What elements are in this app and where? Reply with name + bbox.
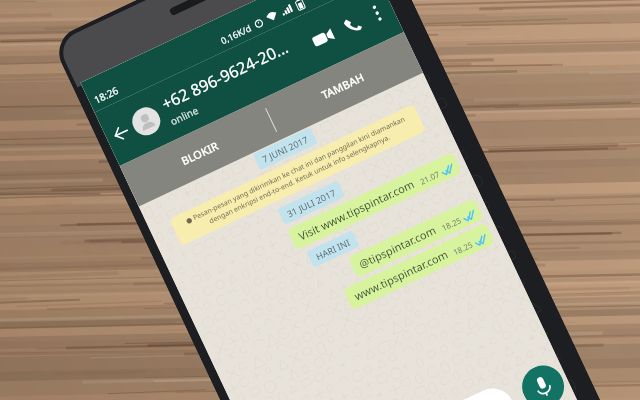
staticText: BLOKIR — [179, 138, 221, 168]
staticText: 18.25 — [451, 238, 475, 257]
button[interactable]: Type a message — [279, 381, 522, 400]
staticText: 21.07 — [418, 168, 441, 187]
staticText: 18:26 — [91, 83, 121, 107]
button[interactable]: More options — [362, 0, 392, 27]
staticText: ● Pesan-pesan yang dikirimkan ke chat in… — [179, 112, 416, 238]
staticText: www.tipspintar.com — [352, 246, 450, 303]
button[interactable]: @tipspintar.com — [347, 198, 484, 278]
staticText: 31 JULI 2017 — [285, 186, 338, 219]
button[interactable]: TAMBAH — [262, 32, 423, 140]
staticText: online — [168, 103, 201, 128]
button[interactable]: Contact photo — [128, 103, 165, 140]
staticText: @tipspintar.com — [356, 222, 439, 271]
button[interactable]: Call — [334, 7, 369, 42]
button[interactable]: Record voice message — [515, 359, 571, 400]
button[interactable]: Visit www.tipspintar.com — [287, 152, 462, 251]
staticText: 7 JUNI 2017 — [260, 133, 310, 165]
button[interactable]: HARI INI — [306, 230, 360, 268]
button[interactable]: 31 JULI 2017 — [277, 180, 345, 225]
button[interactable]: BLOKIR — [120, 99, 280, 207]
button[interactable]: ● Pesan-pesan yang dikirimkan ke chat in… — [169, 104, 426, 246]
button[interactable]: 7 JUNI 2017 — [252, 127, 318, 171]
staticText: 18.25 — [440, 214, 463, 233]
staticText: TAMBAH — [319, 69, 367, 102]
staticText: +62 896-9624-20... — [158, 36, 292, 115]
button[interactable]: www.tipspintar.com — [343, 222, 495, 310]
button[interactable]: Video call — [305, 21, 340, 55]
staticText: Visit www.tipspintar.com — [296, 176, 417, 244]
staticText: HARI INI — [314, 236, 352, 262]
staticText: 0,16K/d — [218, 21, 253, 46]
button[interactable]: Back — [107, 118, 136, 147]
